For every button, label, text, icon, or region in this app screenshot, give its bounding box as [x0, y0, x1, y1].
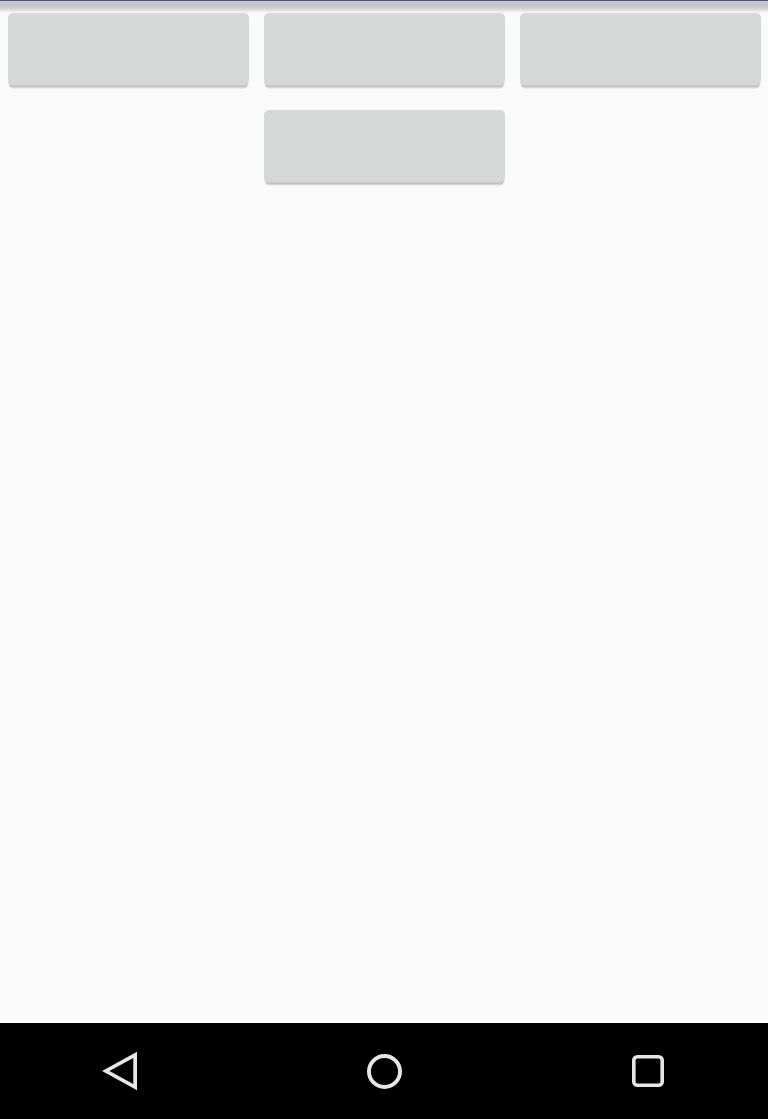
button[interactable]: Button one	[8, 13, 249, 90]
button[interactable]: Button four	[264, 110, 505, 187]
button[interactable]: Recent apps	[612, 1035, 684, 1107]
button[interactable]: Button three	[520, 13, 761, 90]
button[interactable]: Home	[348, 1035, 420, 1107]
button[interactable]: Back	[84, 1035, 156, 1107]
button[interactable]: Button two	[264, 13, 505, 90]
